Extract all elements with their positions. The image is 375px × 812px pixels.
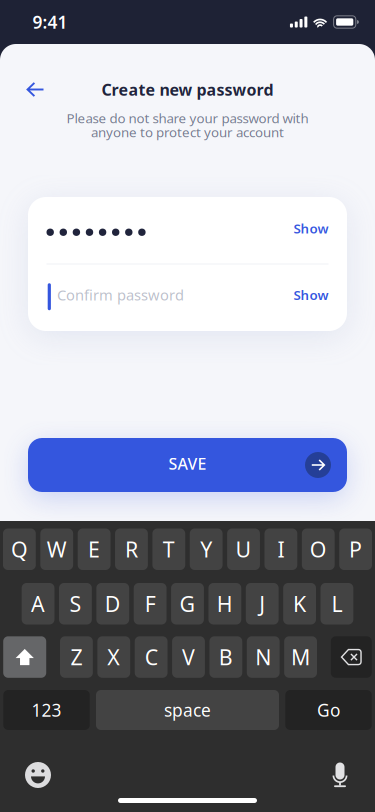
button[interactable]: Show — [293, 289, 328, 307]
button[interactable]: H — [208, 583, 241, 624]
button[interactable]: U — [227, 528, 260, 570]
staticText: V — [182, 643, 195, 671]
staticText: J — [259, 590, 265, 618]
staticText: H — [217, 590, 233, 618]
button[interactable]: J — [246, 583, 279, 624]
button[interactable]: W — [40, 528, 73, 570]
staticText: R — [125, 535, 138, 563]
button[interactable]: M — [284, 636, 317, 678]
staticText: SAVE — [168, 453, 206, 474]
button[interactable]: G — [171, 583, 204, 624]
button[interactable]: Go — [285, 690, 372, 730]
staticText: Q — [11, 535, 28, 563]
button[interactable]: Shift — [3, 636, 46, 678]
staticText: L — [331, 590, 342, 618]
button[interactable]: Emoji — [25, 762, 51, 788]
staticText: Y — [200, 535, 212, 563]
button[interactable]: Show — [293, 221, 328, 239]
staticText: Show — [293, 219, 328, 237]
staticText: S — [69, 590, 81, 618]
button[interactable]: Z — [60, 636, 93, 678]
button[interactable]: SAVE — [28, 438, 347, 492]
button[interactable]: C — [135, 636, 167, 678]
staticText: space — [164, 698, 211, 721]
button[interactable]: A — [22, 583, 54, 624]
button[interactable]: L — [320, 583, 353, 624]
button[interactable]: I — [264, 528, 297, 570]
staticText: 9:41 — [32, 10, 67, 33]
staticText: P — [349, 535, 362, 563]
button[interactable]: D — [96, 583, 129, 624]
staticText: anyone to protect your account — [91, 123, 284, 141]
staticText: Go — [317, 698, 340, 721]
staticText: U — [235, 535, 251, 563]
button[interactable]: E — [78, 528, 110, 570]
staticText: I — [277, 535, 284, 563]
button[interactable]: Delete — [331, 636, 372, 678]
staticText: E — [88, 535, 100, 563]
button[interactable]: F — [134, 583, 166, 624]
staticText: G — [179, 590, 195, 618]
staticText: X — [107, 643, 120, 671]
button[interactable]: V — [172, 636, 205, 678]
button[interactable]: T — [152, 528, 185, 570]
staticText: M — [291, 643, 310, 671]
button[interactable]: Back — [18, 73, 53, 105]
staticText: Show — [293, 286, 328, 304]
staticText: F — [145, 590, 156, 618]
staticText: D — [105, 590, 121, 618]
staticText: B — [219, 643, 233, 671]
button[interactable]: X — [97, 636, 130, 678]
button[interactable]: N — [247, 636, 280, 678]
button[interactable]: R — [115, 528, 148, 570]
staticText: 123 — [31, 698, 61, 721]
button[interactable]: space — [96, 690, 279, 730]
button[interactable]: O — [302, 528, 335, 570]
button[interactable]: Dictation — [330, 762, 350, 787]
staticText: N — [255, 643, 271, 671]
button[interactable]: Q — [3, 528, 36, 570]
staticText: Confirm password — [57, 285, 184, 304]
button[interactable]: K — [283, 583, 316, 624]
button[interactable]: B — [209, 636, 242, 678]
staticText: W — [47, 535, 67, 563]
staticText: O — [310, 535, 327, 563]
button[interactable]: Y — [190, 528, 223, 570]
button[interactable]: S — [59, 583, 92, 624]
staticText: C — [145, 643, 158, 671]
staticText: A — [31, 590, 45, 618]
staticText: Z — [70, 643, 82, 671]
button[interactable]: 123 — [3, 690, 90, 730]
staticText: K — [293, 590, 306, 618]
staticText: Please do not share your password with — [66, 109, 308, 127]
button[interactable]: P — [339, 528, 372, 570]
staticText: T — [163, 535, 175, 563]
staticText: Create new password — [101, 79, 273, 100]
